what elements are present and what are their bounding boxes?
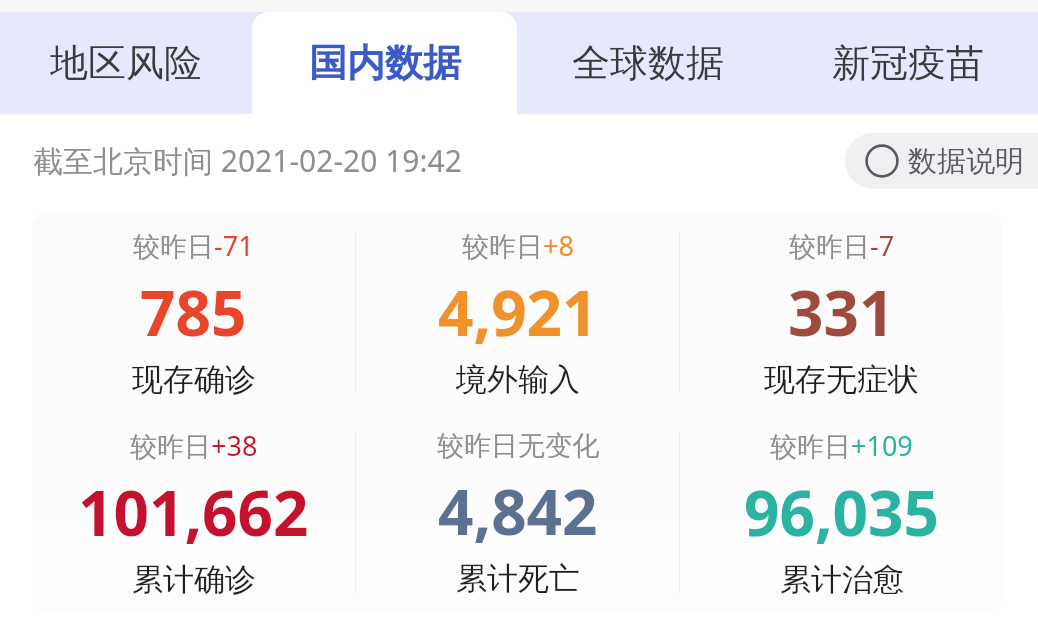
button[interactable]: 全球数据 (517, 12, 778, 114)
staticText: 较昨日无变化 (437, 429, 599, 463)
button[interactable]: 国内数据 (252, 12, 517, 114)
staticText: 累计死亡 (456, 559, 580, 598)
button[interactable]: 较昨日-7 (680, 213, 1003, 413)
staticText: 新冠疫苗 (832, 39, 984, 87)
button[interactable]: 较昨日+8 (356, 213, 679, 413)
button[interactable]: 较昨日-71 (32, 213, 355, 413)
staticText: 地区风险 (50, 39, 202, 87)
staticText: 96,035 (744, 470, 939, 554)
staticText: 数据说明 (908, 143, 1024, 180)
button[interactable]: 较昨日无变化 (356, 413, 679, 613)
staticText: 较昨日+109 (770, 427, 913, 464)
staticText: 国内数据 (309, 39, 461, 87)
staticText: 101,662 (78, 470, 309, 554)
staticText: 全球数据 (572, 39, 724, 87)
staticText: 累计治愈 (780, 560, 904, 599)
staticText: 累计确诊 (132, 560, 256, 599)
button[interactable]: 较昨日+109 (680, 413, 1003, 613)
staticText: 截至北京时间 2021-02-20 19:42 (33, 140, 462, 181)
button[interactable]: 地区风险 (0, 12, 252, 114)
staticText: 现存无症状 (764, 360, 919, 399)
staticText: 4,921 (438, 270, 598, 354)
staticText: 785 (140, 270, 247, 354)
button[interactable]: 新冠疫苗 (778, 12, 1038, 114)
staticText: 现存确诊 (132, 360, 256, 399)
staticText: 较昨日-71 (133, 227, 254, 264)
staticText: 4,842 (438, 469, 598, 553)
staticText: 境外输入 (456, 360, 580, 399)
staticText: 331 (788, 270, 895, 354)
staticText: 较昨日-7 (789, 227, 895, 264)
button[interactable]: 较昨日+38 (32, 413, 355, 613)
staticText: 较昨日+8 (462, 227, 574, 264)
staticText: 较昨日+38 (130, 427, 258, 464)
button[interactable]: 数据说明 (845, 133, 1038, 189)
